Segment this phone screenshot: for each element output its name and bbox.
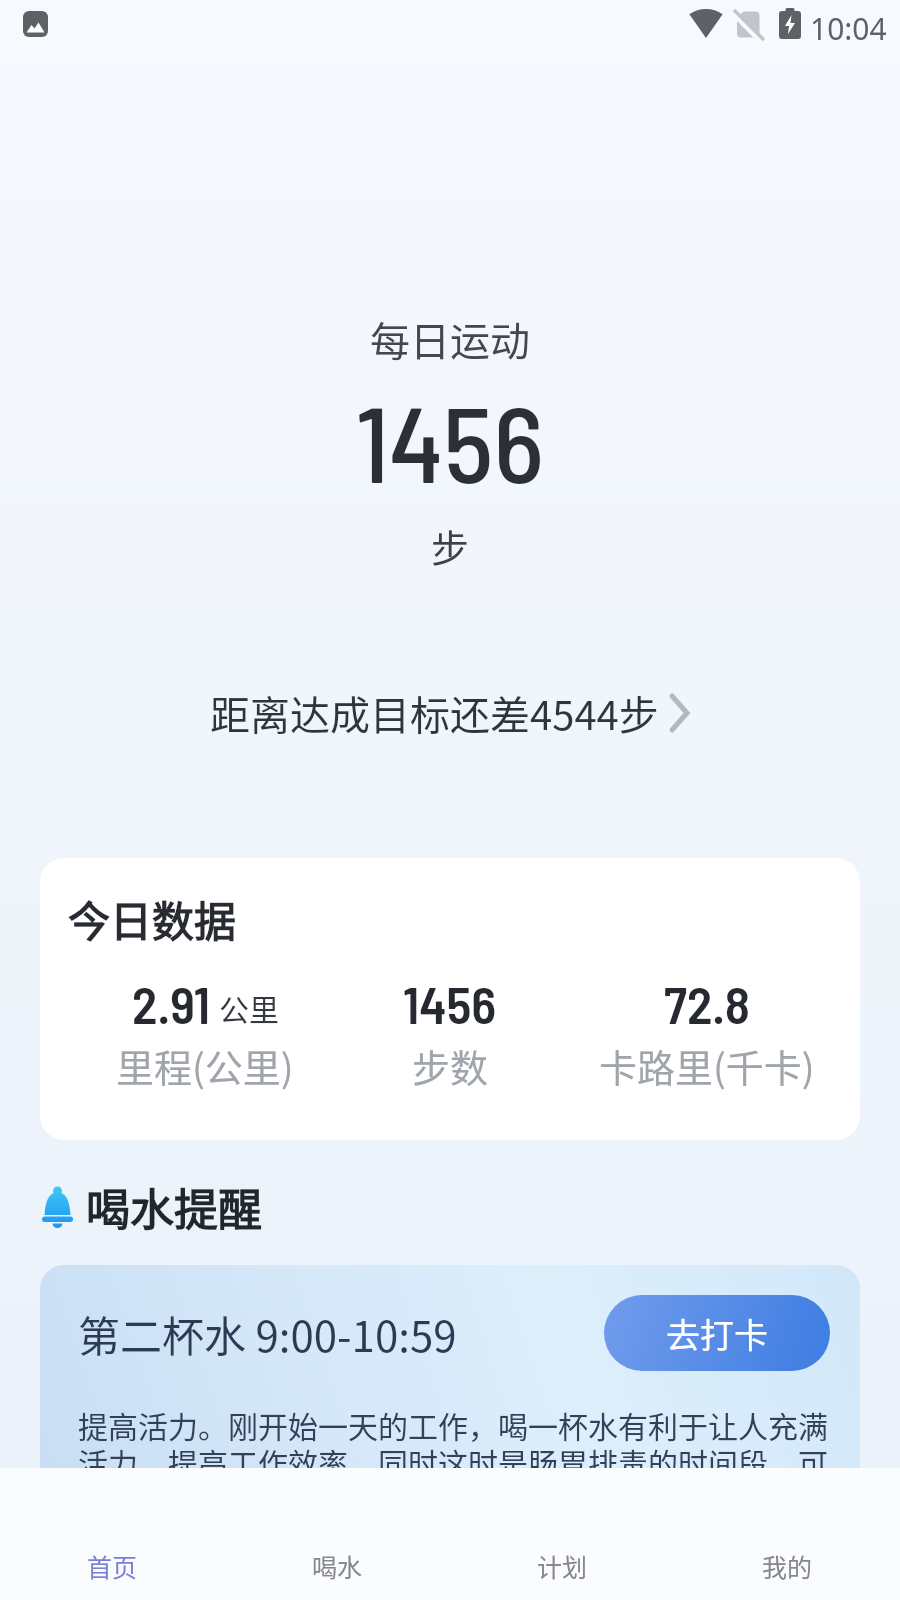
staticText: 每日运动 (370, 310, 530, 368)
staticText: 1456 (356, 376, 544, 504)
staticText: 2.91 (132, 972, 211, 1034)
staticText: 喝水提醒 (86, 1175, 262, 1239)
staticText: 10:04 (810, 8, 887, 49)
staticText: 首页 (87, 1548, 138, 1584)
staticText: 我的 (762, 1548, 813, 1584)
staticText: 喝水 (312, 1548, 363, 1584)
staticText: 今日数据 (68, 888, 237, 949)
staticText: 1456 (403, 972, 497, 1034)
button[interactable]: 我的 (675, 1468, 900, 1600)
staticText: 里程(公里) (116, 1038, 294, 1093)
staticText: 卡路里(千卡) (599, 1038, 815, 1093)
staticText: 公里 (219, 986, 279, 1029)
button[interactable]: 距离达成目标还差4544步 (210, 684, 691, 742)
staticText: 步 (431, 518, 470, 573)
button[interactable]: 计划 (450, 1468, 675, 1600)
staticText: 计划 (537, 1548, 588, 1584)
staticText: 72.8 (664, 972, 751, 1034)
staticText: 提高活力。刚开始一天的工作，喝一杯水有利于让人充满 活力，提高工作效率，同时这时… (78, 1403, 853, 1522)
staticText: 第二杯水 9:00-10:59 (78, 1303, 457, 1364)
staticText: 步数 (412, 1038, 489, 1093)
button[interactable]: 喝水 (225, 1468, 450, 1600)
staticText: 距离达成目标还差4544步 (210, 684, 659, 742)
staticText: 去打卡 (666, 1309, 768, 1358)
button[interactable]: 去打卡 (604, 1295, 830, 1371)
button[interactable]: 首页 (0, 1468, 225, 1600)
